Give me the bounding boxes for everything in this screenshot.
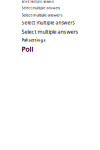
staticText: Select multiple answers [21, 0, 53, 4]
staticText: Poll [21, 45, 33, 54]
staticText: Select multiple answers [21, 28, 78, 35]
staticText: Poll settings [21, 37, 45, 43]
staticText: Select multiple answers [21, 12, 62, 18]
staticText: Select multiple answers [21, 6, 60, 10]
staticText: Select multiple answers [21, 20, 74, 26]
